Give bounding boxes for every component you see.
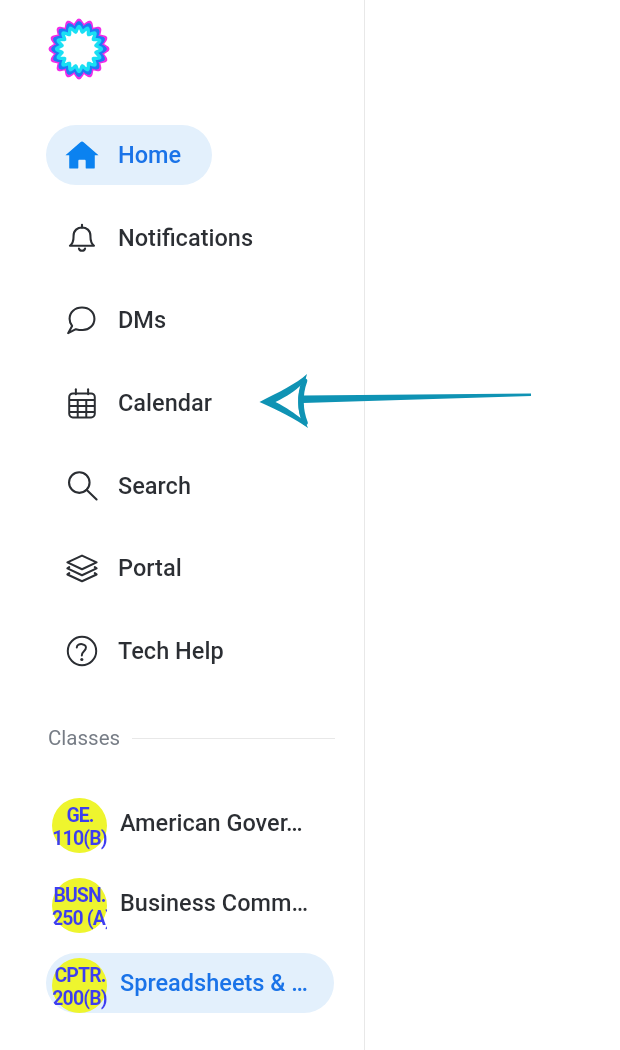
staticText: Business Comm… <box>120 889 309 917</box>
button[interactable]: Notifications <box>46 208 284 268</box>
staticText: Portal <box>118 554 182 582</box>
staticText: Classes <box>48 726 121 750</box>
button[interactable]: Tech Help <box>46 621 254 681</box>
staticText: Home <box>118 141 182 169</box>
staticText: BUSN. <box>53 884 106 907</box>
button[interactable]: GE. <box>46 793 329 853</box>
staticText: CPTR. <box>54 964 106 987</box>
button[interactable]: Calendar <box>46 373 243 433</box>
button[interactable]: DMs <box>46 290 197 350</box>
staticText: Notifications <box>118 224 254 252</box>
button[interactable]: Home <box>46 125 212 185</box>
staticText: GE. <box>66 804 94 827</box>
staticText: Search <box>118 472 191 500</box>
staticText: 250 (A) <box>52 907 107 930</box>
staticText: Spreadsheets & … <box>120 969 308 997</box>
staticText: 200(B) <box>52 987 107 1010</box>
button[interactable]: App logo <box>47 17 111 81</box>
staticText: Calendar <box>118 389 213 417</box>
staticText: 110(B) <box>52 827 107 850</box>
staticText: American Gover… <box>120 809 303 837</box>
staticText: Tech Help <box>118 637 224 665</box>
button[interactable]: BUSN. <box>46 873 335 933</box>
staticText: DMs <box>118 306 167 334</box>
button[interactable]: Search <box>46 456 221 516</box>
button[interactable]: Portal <box>46 538 212 598</box>
button[interactable]: CPTR. <box>46 953 334 1013</box>
